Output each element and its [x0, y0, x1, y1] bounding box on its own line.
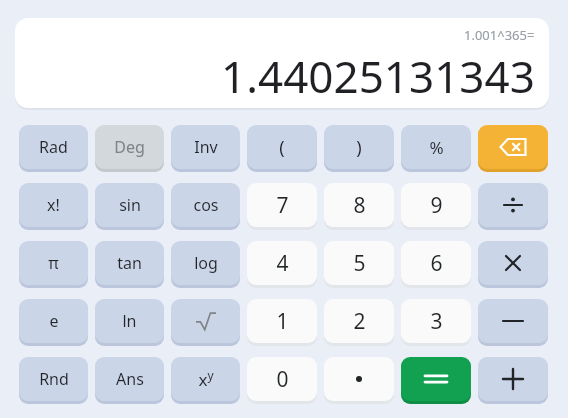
staticText: log — [194, 252, 218, 274]
other: Decimal point — [324, 357, 394, 404]
button[interactable]: xy — [171, 357, 240, 401]
button[interactable]: log — [171, 241, 240, 285]
staticText: sin — [119, 194, 141, 216]
button[interactable] — [478, 299, 548, 343]
staticText: e — [49, 310, 59, 332]
staticText: tan — [117, 252, 142, 274]
staticText: 1.001^365= — [464, 26, 535, 44]
button[interactable] — [324, 357, 394, 401]
button[interactable]: 0 — [247, 357, 317, 401]
staticText: Inv — [194, 136, 218, 158]
button[interactable]: Rnd — [19, 357, 88, 401]
button[interactable] — [478, 357, 548, 401]
button[interactable] — [478, 125, 548, 169]
staticText: 3 — [430, 307, 443, 336]
staticText: 5 — [353, 249, 366, 278]
button[interactable] — [478, 241, 548, 285]
other: Minus — [478, 299, 548, 346]
staticText: 1.44025131343 — [221, 46, 535, 106]
button[interactable]: 4 — [247, 241, 317, 285]
button[interactable]: 5 — [324, 241, 394, 285]
other: Backspace — [478, 125, 548, 172]
button[interactable] — [478, 183, 548, 227]
button[interactable]: cos — [171, 183, 240, 227]
button[interactable]: π — [19, 241, 88, 285]
button[interactable]: 2 — [324, 299, 394, 343]
staticText: 9 — [430, 191, 443, 220]
staticText: Rad — [39, 136, 68, 158]
other: Square root — [171, 299, 240, 346]
button[interactable]: x! — [19, 183, 88, 227]
button[interactable]: 8 — [324, 183, 394, 227]
button[interactable]: Inv — [171, 125, 240, 169]
button[interactable]: 1 — [247, 299, 317, 343]
staticText: 1 — [276, 307, 289, 336]
staticText: ( — [279, 135, 285, 160]
button[interactable]: ln — [95, 299, 164, 343]
button[interactable]: tan — [95, 241, 164, 285]
button[interactable]: Rad — [19, 125, 88, 169]
button[interactable]: ( — [247, 125, 317, 169]
other: Equals — [401, 357, 471, 404]
staticText: Rnd — [39, 368, 69, 390]
staticText: ) — [356, 135, 362, 160]
other: Plus — [478, 357, 548, 404]
button[interactable]: 6 — [401, 241, 471, 285]
staticText: % — [429, 136, 444, 159]
staticText: Ans — [116, 368, 144, 390]
staticText: π — [48, 252, 59, 274]
staticText: 8 — [353, 191, 366, 220]
staticText: cos — [193, 194, 219, 216]
button[interactable]: 3 — [401, 299, 471, 343]
other: Divide — [478, 183, 548, 230]
button[interactable]: e — [19, 299, 88, 343]
staticText: 0 — [276, 365, 289, 394]
staticText: x! — [47, 194, 60, 216]
button[interactable] — [401, 357, 471, 401]
staticText: Deg — [114, 136, 145, 158]
staticText: xy — [198, 367, 214, 391]
staticText: ln — [122, 310, 137, 332]
button[interactable]: 7 — [247, 183, 317, 227]
button[interactable]: 9 — [401, 183, 471, 227]
button[interactable]: 1.001^365= — [15, 18, 549, 108]
staticText: 4 — [276, 249, 289, 278]
other: Multiply — [478, 241, 548, 288]
button[interactable]: ) — [324, 125, 394, 169]
staticText: 7 — [276, 191, 289, 220]
staticText: 6 — [430, 249, 443, 278]
button[interactable] — [171, 299, 240, 343]
button[interactable]: sin — [95, 183, 164, 227]
staticText: 2 — [353, 307, 366, 336]
button[interactable]: % — [401, 125, 471, 169]
button[interactable]: Ans — [95, 357, 164, 401]
button[interactable]: Deg — [95, 125, 164, 169]
